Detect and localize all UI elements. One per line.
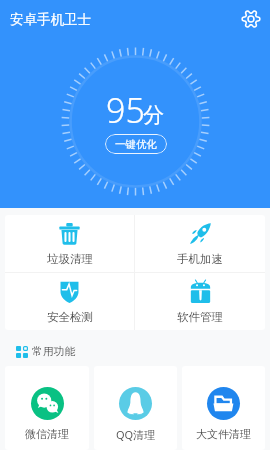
staticText: 软件管理 [177, 310, 223, 324]
button[interactable]: 软件管理 [135, 273, 265, 330]
staticText: 垃圾清理 [47, 252, 93, 266]
button[interactable]: 垃圾清理 [5, 215, 134, 272]
button[interactable]: 一键优化 [105, 134, 167, 154]
staticText: QQ清理 [116, 427, 156, 442]
button[interactable]: 微信清理 [5, 366, 89, 450]
button[interactable]: 手机加速 [135, 215, 265, 272]
button[interactable]: Settings [240, 8, 262, 30]
staticText: 安卓手机卫士 [10, 11, 91, 28]
staticText: 大文件清理 [196, 427, 251, 441]
staticText: 一键优化 [115, 138, 157, 151]
staticText: 手机加速 [177, 252, 223, 266]
button[interactable]: 安全检测 [5, 273, 134, 330]
staticText: 安全检测 [47, 310, 93, 324]
staticText: 95 [106, 87, 145, 133]
staticText: 微信清理 [25, 427, 69, 441]
staticText: 分 [143, 102, 164, 128]
staticText: 常用功能 [32, 345, 76, 359]
button[interactable]: 大文件清理 [182, 366, 265, 450]
button[interactable]: QQ清理 [94, 366, 177, 450]
